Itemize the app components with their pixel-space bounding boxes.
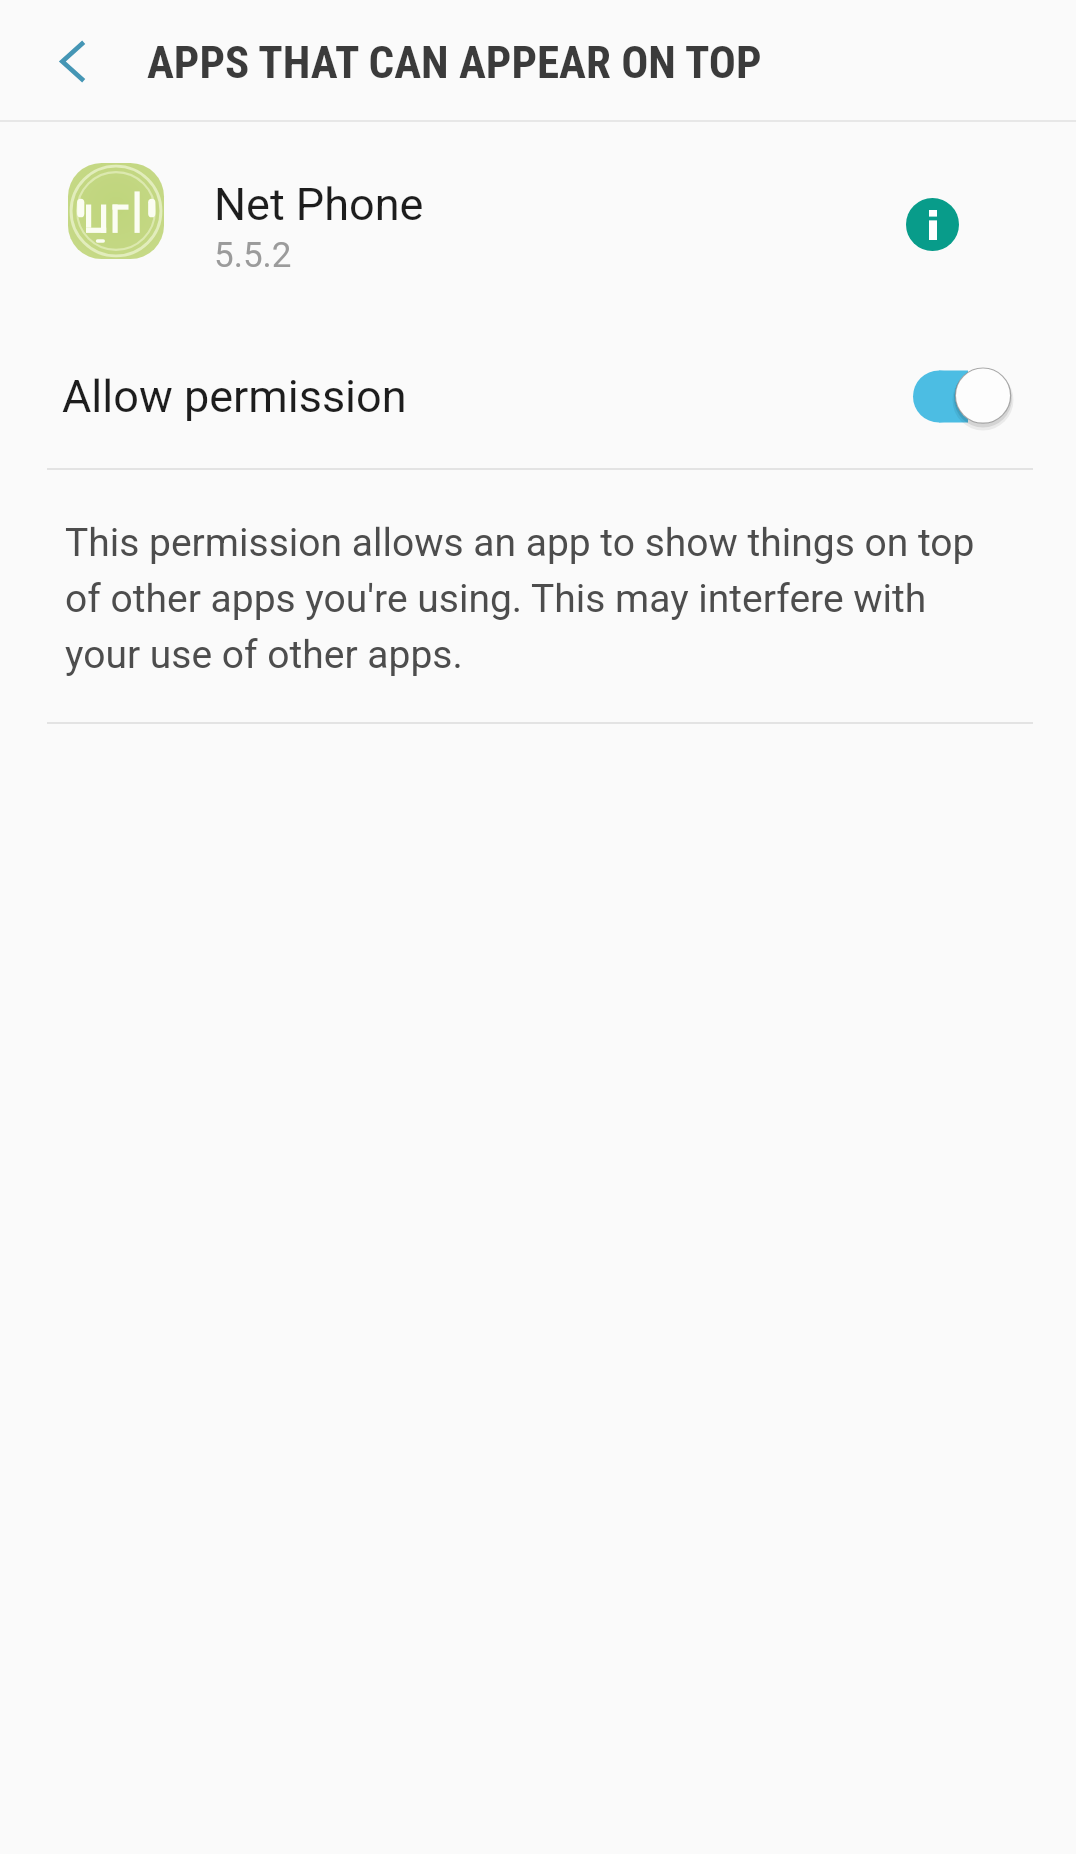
button[interactable]: App info	[877, 169, 987, 279]
staticText: APPS THAT CAN APPEAR ON TOP	[147, 36, 762, 89]
button[interactable]: Allow permission	[0, 340, 1076, 468]
button[interactable]: Allow permission, on	[880, 340, 1030, 468]
button[interactable]: Navigate up	[17, 6, 128, 117]
staticText: Allow permission	[62, 370, 407, 423]
staticText: 5.5.2	[214, 235, 292, 276]
staticText: Net Phone	[214, 178, 424, 231]
button[interactable]: Net Phone	[0, 122, 1076, 340]
staticText: This permission allows an app to show th…	[65, 520, 985, 678]
